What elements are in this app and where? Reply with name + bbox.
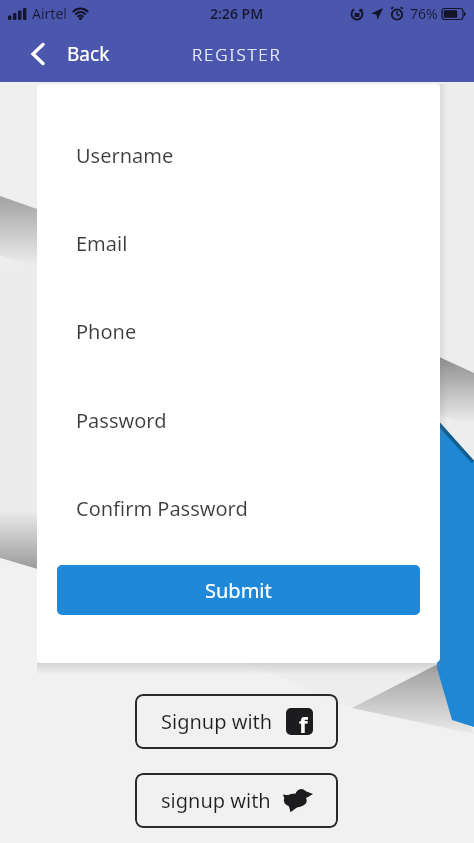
staticText: Airtel [32, 4, 67, 23]
staticText: REGISTER [192, 43, 282, 66]
staticText: 2:26 PM [210, 4, 264, 23]
staticText: Confirm Password [76, 495, 248, 522]
button[interactable]: Submit [57, 565, 420, 615]
staticText: Username [76, 142, 174, 169]
staticText: signup with [161, 787, 271, 814]
button[interactable]: Confirm Password [57, 485, 420, 531]
staticText: Submit [205, 577, 272, 604]
staticText: Signup with [161, 708, 273, 735]
button[interactable]: Signup with [135, 694, 338, 749]
button[interactable]: Phone [57, 308, 420, 354]
staticText: Password [76, 407, 167, 434]
staticText: Back [67, 41, 110, 67]
button[interactable]: Email [57, 220, 420, 266]
button[interactable]: signup with [135, 773, 338, 828]
button[interactable]: Back [30, 41, 110, 67]
button[interactable]: Password [57, 397, 420, 443]
staticText: 76% [410, 4, 438, 23]
button[interactable]: Username [57, 132, 420, 178]
staticText: Phone [76, 318, 137, 345]
staticText: Email [76, 230, 128, 257]
staticText: f [299, 709, 308, 735]
